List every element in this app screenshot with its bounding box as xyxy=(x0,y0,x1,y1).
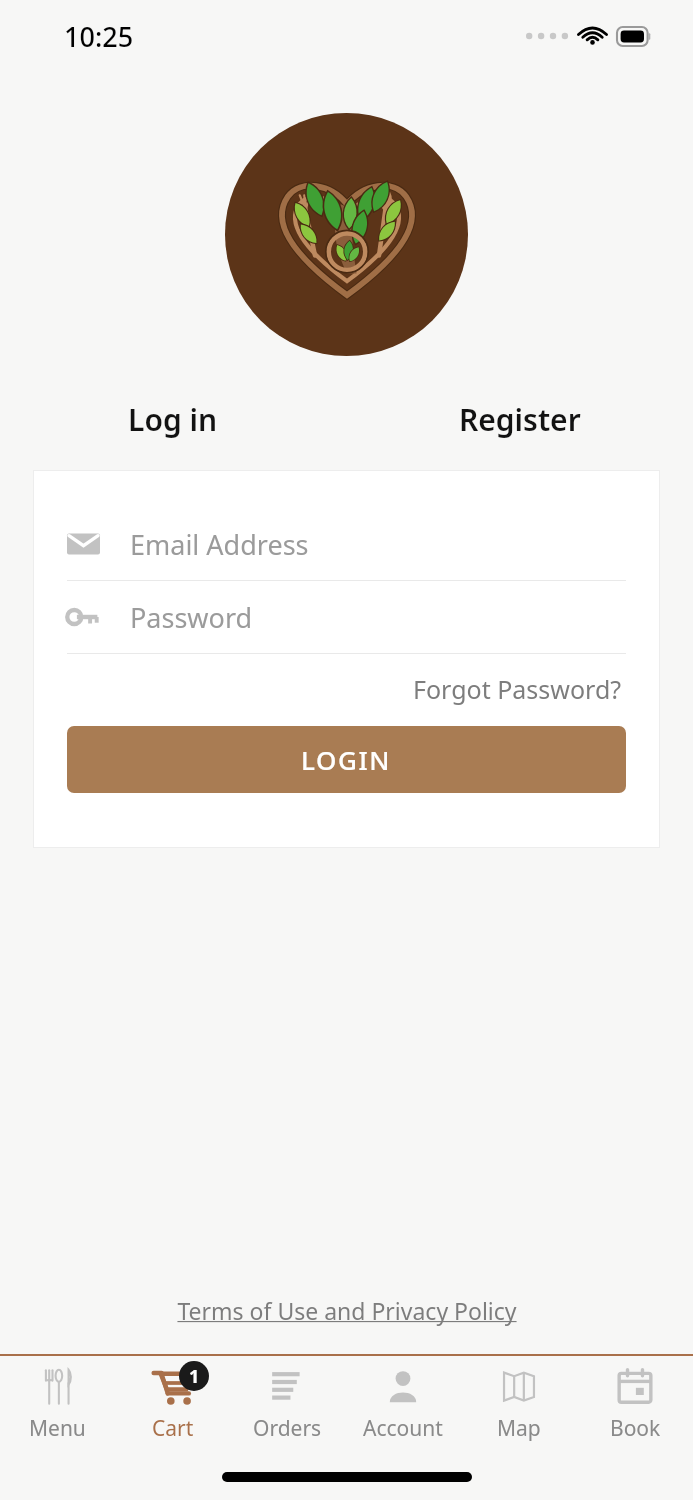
staticText: Menu xyxy=(29,1414,86,1443)
staticText: Book xyxy=(610,1414,661,1443)
button[interactable]: LOGIN xyxy=(67,726,626,793)
staticText: LOGIN xyxy=(301,742,392,777)
button[interactable]: Book xyxy=(577,1356,693,1454)
button[interactable]: Map xyxy=(461,1356,577,1454)
staticText: Cart xyxy=(152,1414,194,1443)
button[interactable]: Terms of Use and Privacy Policy xyxy=(171,1289,523,1332)
button[interactable]: Email Address xyxy=(67,508,626,580)
staticText: Map xyxy=(497,1414,541,1443)
button[interactable]: Account xyxy=(345,1356,461,1454)
button[interactable]: Log in xyxy=(0,399,346,440)
button[interactable]: Cart xyxy=(115,1356,230,1454)
staticText: Account xyxy=(363,1414,443,1443)
staticText: Email Address xyxy=(130,526,309,563)
staticText: 10:25 xyxy=(64,18,134,55)
button[interactable]: Register xyxy=(346,399,693,440)
button[interactable]: Menu xyxy=(0,1356,115,1454)
staticText: Password xyxy=(130,599,253,636)
staticText: 1 xyxy=(189,1364,200,1389)
button[interactable]: Orders xyxy=(230,1356,345,1454)
button[interactable]: Password xyxy=(67,581,626,653)
staticText: Terms of Use and Privacy Policy xyxy=(177,1295,517,1326)
button[interactable]: Forgot Password? xyxy=(409,668,626,710)
staticText: Register xyxy=(459,399,581,440)
staticText: Log in xyxy=(128,399,218,440)
staticText: Orders xyxy=(253,1414,322,1443)
staticText: Forgot Password? xyxy=(413,672,622,706)
